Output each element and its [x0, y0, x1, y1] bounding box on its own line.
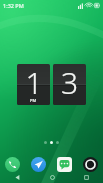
staticText: 32	[53, 64, 86, 103]
staticText: 1	[25, 64, 43, 103]
button[interactable]: Recents	[69, 172, 103, 183]
button[interactable]: Messages	[51, 155, 77, 174]
button[interactable]: 1	[17, 64, 86, 105]
staticText: 1:32 PM	[3, 2, 24, 9]
button[interactable]: Telegram	[25, 155, 51, 174]
button[interactable]: Phone	[0, 155, 25, 174]
button[interactable]: Camera	[77, 155, 103, 174]
staticText: PM	[30, 98, 37, 103]
button[interactable]: Home	[35, 172, 69, 183]
button[interactable]: Back	[0, 172, 35, 183]
